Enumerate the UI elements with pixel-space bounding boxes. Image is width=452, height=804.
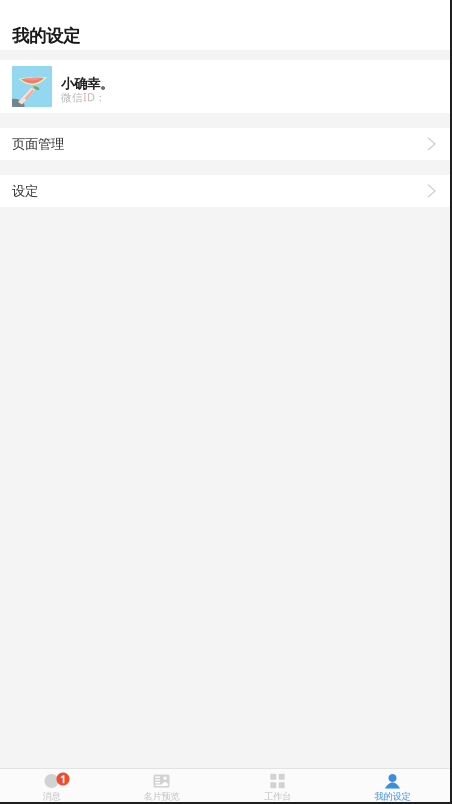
button[interactable]: 名片预览	[103, 769, 220, 802]
button[interactable]: 小确幸。	[0, 60, 450, 113]
staticText: 微信ID：	[61, 90, 106, 104]
button[interactable]: 页面管理	[0, 128, 450, 160]
button[interactable]: 工作台	[220, 769, 335, 802]
staticText: 消息	[42, 790, 60, 802]
staticText: 1	[60, 772, 66, 786]
button[interactable]: 我的设定	[335, 769, 450, 802]
staticText: 设定	[12, 183, 38, 199]
staticText: 工作台	[264, 790, 291, 802]
staticText: 页面管理	[12, 136, 64, 152]
staticText: 名片预览	[143, 790, 179, 802]
button[interactable]: 1	[0, 769, 103, 802]
staticText: 我的设定	[12, 25, 80, 47]
button[interactable]: 设定	[0, 175, 450, 207]
staticText: 我的设定	[374, 790, 410, 802]
staticText: 小确幸。	[61, 76, 113, 92]
